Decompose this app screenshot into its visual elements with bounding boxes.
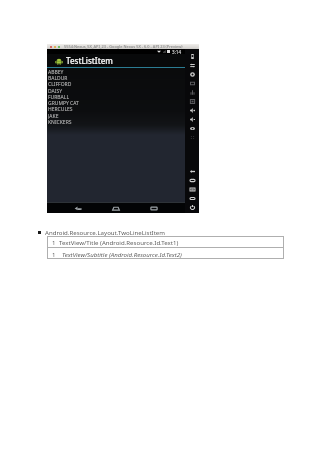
button[interactable]: GRUMPY CAT	[47, 100, 185, 106]
button[interactable]: Phone	[185, 97, 199, 106]
staticText: KNICKERS	[48, 119, 72, 125]
staticText: 1	[52, 238, 56, 246]
button[interactable]: Power off	[185, 203, 199, 212]
staticText: Android.Resource.Layout.TwoLineListItem	[45, 228, 166, 236]
button[interactable]: Volume up	[185, 115, 199, 124]
staticText: FURBALL	[48, 94, 70, 100]
button[interactable]: FURBALL	[47, 94, 185, 100]
staticText: 1	[52, 250, 56, 258]
button[interactable]: Cellular	[185, 88, 199, 97]
button[interactable]: DAISY	[47, 88, 185, 94]
button[interactable]: CLIFFORD	[47, 81, 185, 87]
button[interactable]: Rotate	[185, 70, 199, 79]
staticText: GRUMPY CAT	[48, 100, 79, 106]
button[interactable]: Volume down	[185, 124, 199, 133]
button[interactable]: Keyboard	[185, 185, 199, 194]
staticText: TestListItem	[66, 55, 113, 66]
staticText: TextView/Title (Android.Resource.Id.Text…	[59, 238, 179, 246]
button[interactable]: Home	[109, 204, 123, 213]
button[interactable]: Recent apps	[147, 204, 161, 213]
button[interactable]: ABBEY	[47, 69, 185, 75]
staticText: ABBEY	[48, 69, 64, 75]
button[interactable]: Back	[185, 167, 199, 176]
staticText: 3:14	[172, 49, 182, 54]
button[interactable]: JAKE	[47, 113, 185, 119]
button[interactable]: Menu	[185, 194, 199, 203]
button[interactable]: HERCULES	[47, 106, 185, 112]
button[interactable]: Home	[185, 176, 199, 185]
staticText: DAISY	[48, 88, 63, 94]
staticText: JAKE	[48, 113, 59, 119]
button[interactable]: Directional pad	[185, 106, 199, 115]
button[interactable]: BALDUR	[47, 75, 185, 81]
staticText: TextView/Subtitle (Android.Resource.Id.T…	[62, 250, 182, 258]
button[interactable]: Battery	[185, 79, 199, 88]
button[interactable]: Volume	[185, 61, 199, 70]
button[interactable]: Power	[185, 52, 199, 61]
staticText: 5554:Nexus_5X_API_23 - Google Nexus 5X -…	[64, 44, 183, 49]
staticText: CLIFFORD	[48, 81, 72, 87]
staticText: BALDUR	[48, 75, 68, 81]
button[interactable]: KNICKERS	[47, 119, 185, 125]
staticText: HERCULES	[48, 106, 73, 112]
button[interactable]: Back	[71, 204, 85, 213]
button[interactable]: Location	[185, 133, 199, 142]
